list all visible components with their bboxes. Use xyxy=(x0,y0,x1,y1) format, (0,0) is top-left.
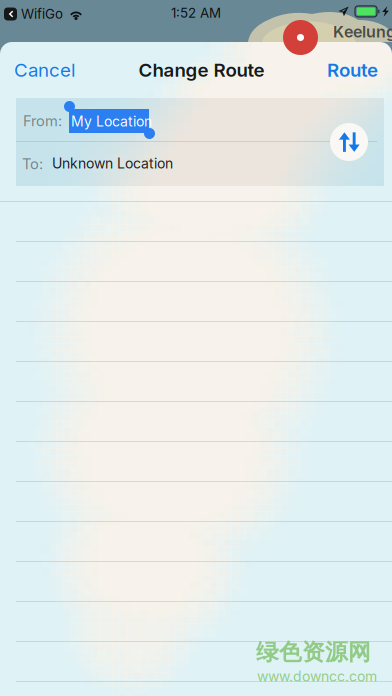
staticText: Keelung xyxy=(333,22,392,41)
button[interactable]: Route xyxy=(317,48,392,92)
staticText: Route xyxy=(327,59,378,81)
staticText: 1:52 AM xyxy=(171,5,221,21)
button[interactable]: Cancel xyxy=(0,48,86,92)
staticText: To: xyxy=(22,155,43,173)
staticText: Cancel xyxy=(14,59,76,81)
staticText: My Location xyxy=(71,113,152,130)
staticText: WifiGo xyxy=(21,6,63,22)
staticText: Unknown Location xyxy=(52,155,173,172)
button[interactable]: Swap start and destination xyxy=(330,123,368,161)
staticText: From: xyxy=(23,112,62,130)
staticText: Change Route xyxy=(138,59,264,81)
staticText: 绿色资源网 xyxy=(256,638,371,667)
staticText: www.downcc.com xyxy=(257,668,377,685)
